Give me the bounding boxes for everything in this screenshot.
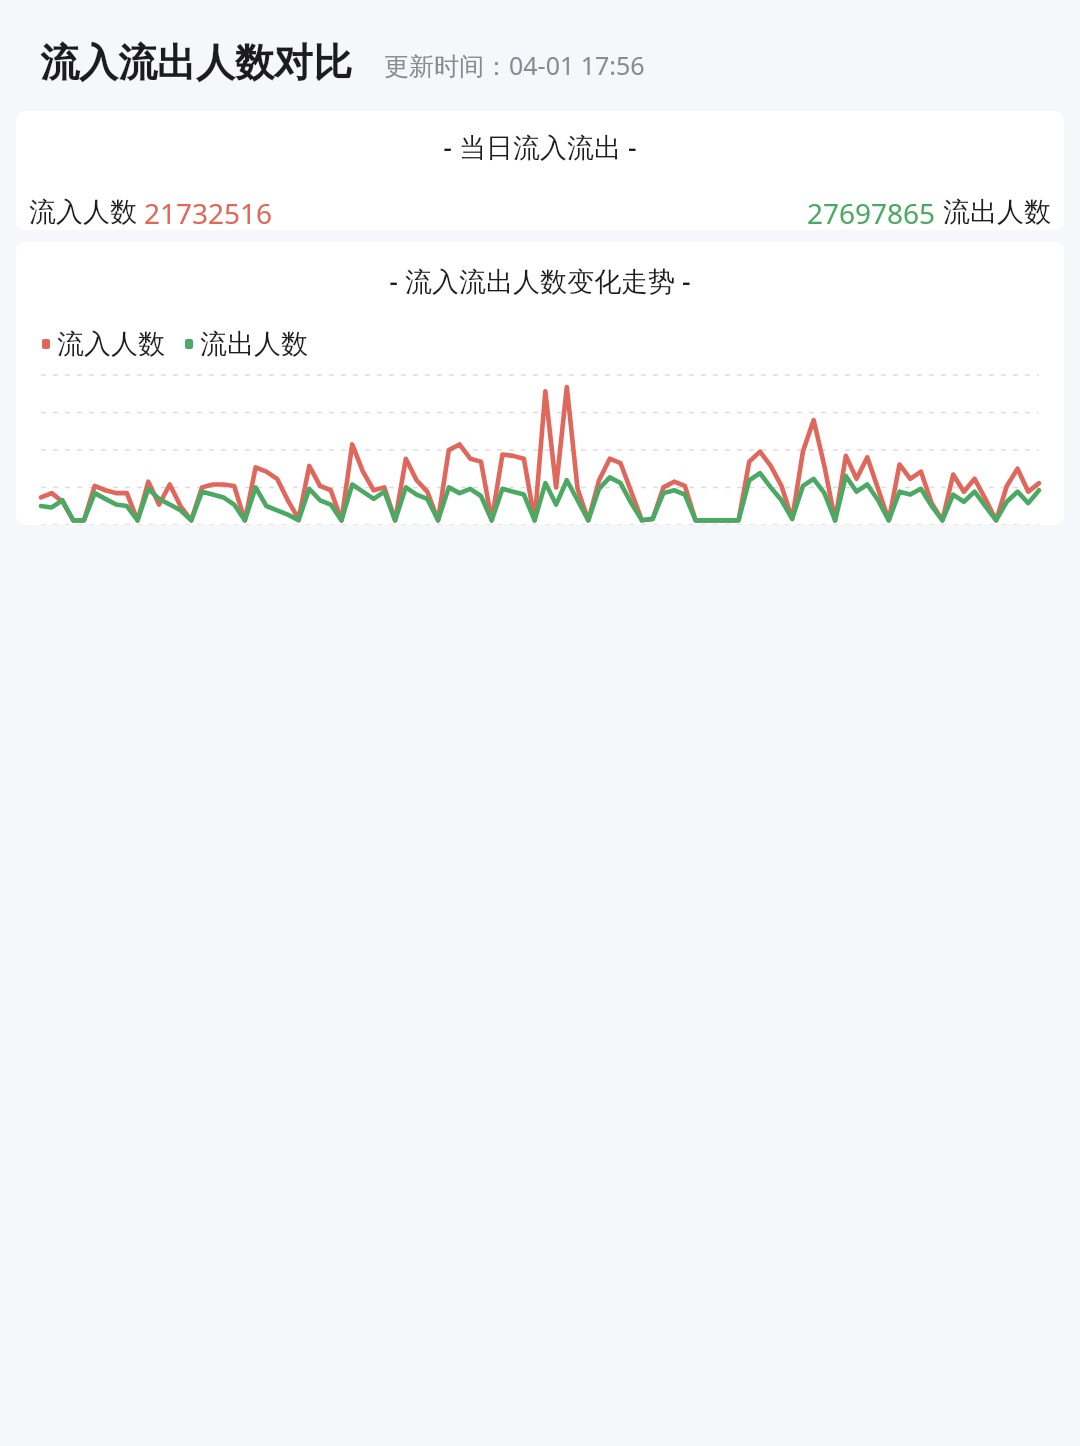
staticText: 更新时间：04-01 17:56 xyxy=(384,48,645,82)
staticText: 流出人数 xyxy=(200,327,308,361)
button[interactable]: 流出人数 xyxy=(185,327,308,361)
button[interactable]: - 流入流出人数变化走势 - xyxy=(16,242,1064,525)
button[interactable]: 流入人数 xyxy=(42,327,165,361)
staticText: 27697865 xyxy=(807,194,936,230)
staticText: 流入人数 xyxy=(29,195,137,229)
staticText: 流入人数 xyxy=(57,327,165,361)
staticText: 21732516 xyxy=(144,194,273,230)
staticText: - 当日流入流出 - xyxy=(443,128,637,165)
button[interactable]: - 当日流入流出 - xyxy=(16,111,1064,230)
staticText: - 流入流出人数变化走势 - xyxy=(16,262,1064,299)
staticText: 流出人数 xyxy=(943,195,1051,229)
staticText: 流入流出人数对比 xyxy=(40,38,352,87)
